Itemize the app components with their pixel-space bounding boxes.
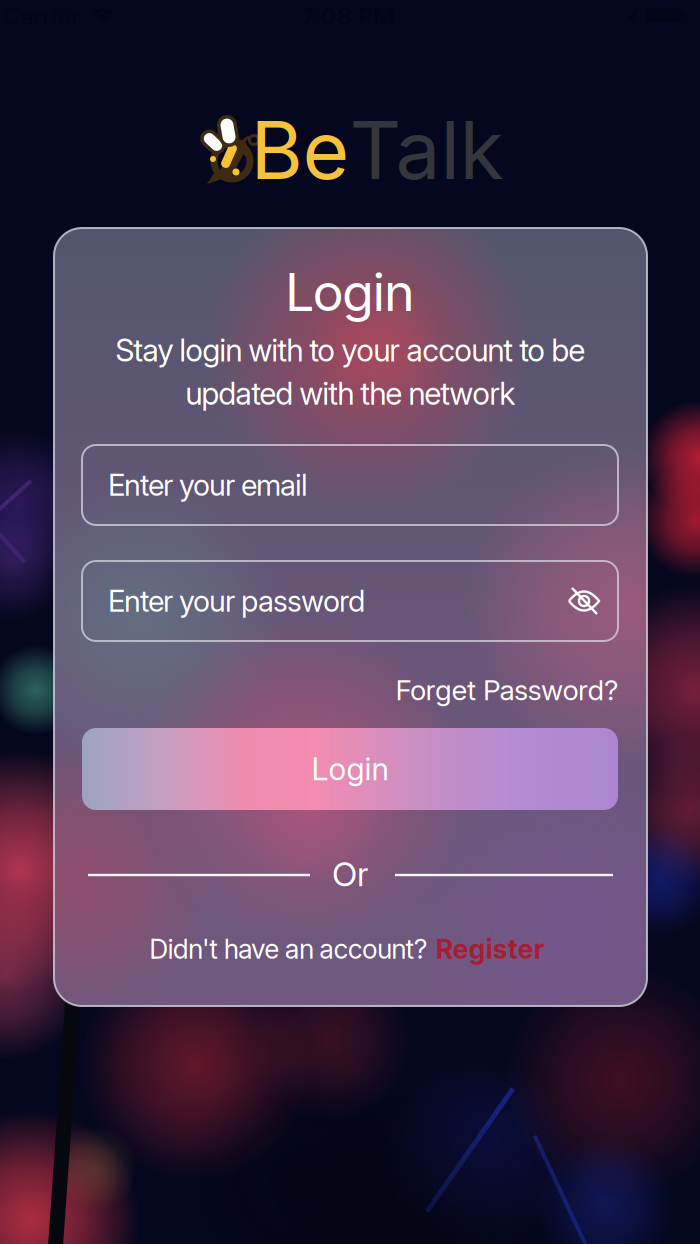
button[interactable]: Show password [557, 574, 611, 628]
staticText: Enter your email [108, 468, 308, 502]
staticText: Stay login with to your account to be up… [115, 332, 585, 412]
staticText: Enter your password [108, 584, 365, 618]
staticText: Be [250, 103, 349, 197]
button[interactable]: Enter your email [82, 445, 618, 525]
staticText: Login [311, 751, 388, 787]
staticText: Login [285, 261, 415, 323]
staticText: Register [436, 933, 545, 965]
staticText: Forget Password? [395, 673, 618, 706]
button[interactable]: Register [436, 933, 545, 965]
staticText: Didn't have an account? [149, 933, 428, 965]
button[interactable]: Forget Password? [395, 673, 618, 706]
staticText: Talk [349, 103, 503, 197]
staticText: Or [332, 854, 368, 894]
button[interactable]: Login [82, 728, 618, 810]
button[interactable]: Enter your password [82, 561, 618, 641]
